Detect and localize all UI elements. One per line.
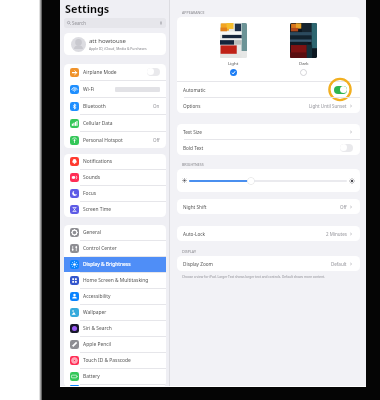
staticText: Apple ID, iCloud, Media & Purchases — [89, 46, 159, 51]
button[interactable]: Touch ID & Passcode — [64, 353, 166, 368]
staticText: Options — [183, 103, 201, 109]
button[interactable]: Toggle Airplane Mode — [147, 68, 160, 76]
button[interactable]: Text Size — [177, 124, 360, 139]
staticText: Light — [228, 60, 239, 66]
staticText: Airplane Mode — [83, 69, 117, 76]
staticText: General — [83, 229, 102, 236]
staticText: Bluetooth — [83, 103, 106, 110]
button[interactable]: Notifications — [64, 154, 166, 169]
button[interactable]: Privacy & Security — [64, 385, 166, 387]
button[interactable]: Battery — [64, 369, 166, 384]
button[interactable]: Auto-Lock — [177, 226, 360, 241]
button[interactable]: Automatic — [177, 82, 360, 97]
staticText: Wallpaper — [83, 309, 107, 316]
staticText: Personal Hotspot — [83, 137, 123, 144]
staticText: Choose a view for iPad. Larger Text show… — [182, 275, 326, 279]
staticText: Automatic — [183, 87, 206, 93]
staticText: DISPLAY — [182, 249, 196, 254]
staticText: Display & Brightness — [83, 261, 131, 268]
button[interactable]: Toggle Bold Text — [340, 144, 353, 152]
button[interactable]: Display & Brightness — [64, 257, 166, 272]
button[interactable]: Options — [177, 98, 360, 113]
staticText: Night Shift — [183, 204, 207, 210]
staticText: Notifications — [83, 158, 113, 165]
button[interactable]: Focus — [64, 186, 166, 201]
button[interactable]: Bold Text — [177, 140, 360, 155]
button[interactable]: att howtouse — [64, 33, 166, 55]
button[interactable]: Airplane Mode — [64, 64, 166, 80]
button[interactable]: Display Zoom — [177, 256, 360, 271]
staticText: Apple Pencil — [83, 341, 112, 348]
staticText: 2 Minutes — [326, 231, 347, 237]
staticText: Control Center — [83, 245, 117, 252]
button[interactable]: Wallpaper — [64, 305, 166, 320]
staticText: Wi-Fi — [83, 86, 95, 93]
staticText: Focus — [83, 190, 97, 197]
button[interactable]: Sounds — [64, 170, 166, 185]
staticText: Cellular Data — [83, 120, 113, 127]
staticText: Sounds — [83, 174, 101, 181]
button[interactable]: Accessibility — [64, 289, 166, 304]
button[interactable]: Bluetooth — [64, 98, 166, 114]
staticText: Bold Text — [183, 145, 204, 151]
button[interactable]: Search — [64, 18, 166, 28]
button[interactable]: Cellular Data — [64, 115, 166, 131]
staticText: Siri & Search — [83, 325, 112, 332]
button[interactable]: Night Shift — [177, 199, 360, 214]
button[interactable]: Light — [220, 23, 247, 76]
staticText: Search — [72, 20, 86, 26]
staticText: Text Size — [183, 129, 202, 135]
staticText: Default — [331, 261, 347, 267]
staticText: BRIGHTNESS — [182, 162, 204, 167]
button[interactable]: Home Screen & Multitasking — [64, 273, 166, 288]
staticText: att howtouse — [89, 37, 126, 45]
button[interactable]: Toggle Automatic — [334, 86, 347, 94]
staticText: Off — [153, 137, 160, 143]
staticText: Accessibility — [83, 293, 111, 300]
staticText: Settings — [65, 1, 110, 16]
staticText: Home Screen & Multitasking — [83, 277, 149, 284]
button[interactable]: General — [64, 225, 166, 240]
staticText: Battery — [83, 373, 100, 380]
staticText: Display Zoom — [183, 261, 213, 267]
staticText: Light Until Sunset — [309, 103, 347, 109]
staticText: Off — [340, 204, 347, 210]
button[interactable]: Siri & Search — [64, 321, 166, 336]
button[interactable]: Dark — [290, 23, 317, 76]
button[interactable]: Wi-Fi — [64, 81, 166, 97]
staticText: Touch ID & Passcode — [83, 357, 131, 364]
staticText: On — [153, 103, 160, 109]
staticText: Screen Time — [83, 206, 112, 213]
button[interactable]: Control Center — [64, 241, 166, 256]
staticText: Dark — [299, 60, 309, 66]
staticText: APPEARANCE — [182, 10, 205, 15]
staticText: Auto-Lock — [183, 231, 205, 237]
button[interactable]: Screen Time — [64, 202, 166, 217]
button[interactable]: Apple Pencil — [64, 337, 166, 352]
button[interactable]: Personal Hotspot — [64, 132, 166, 148]
